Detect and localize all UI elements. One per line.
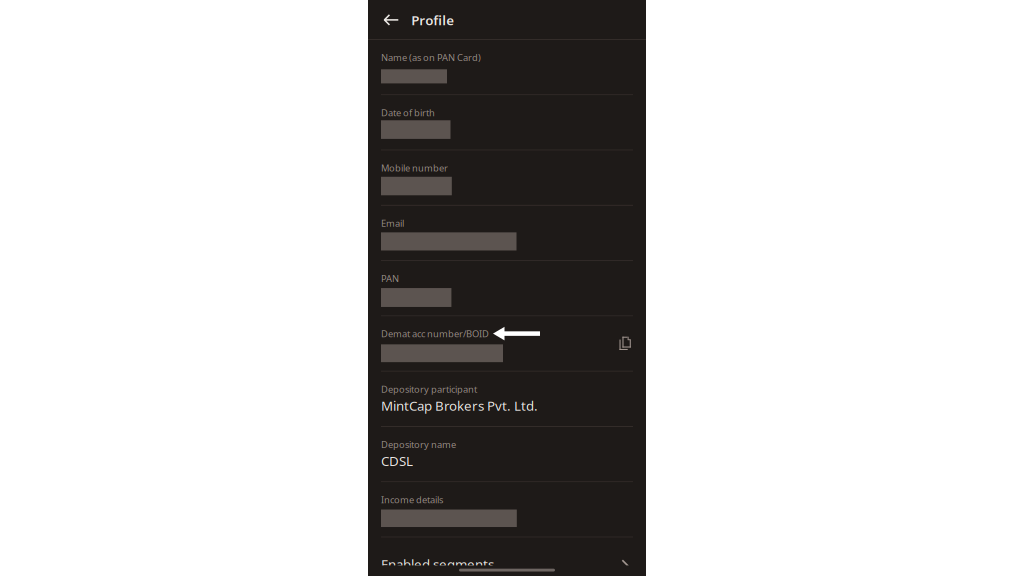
staticText: MintCap Brokers Pvt. Ltd. bbox=[381, 397, 538, 414]
button[interactable]: Copy demat account number bbox=[606, 330, 636, 360]
staticText: Email bbox=[381, 217, 404, 229]
staticText: Depository participant bbox=[381, 383, 477, 395]
staticText: Mobile number bbox=[381, 162, 448, 174]
staticText: Enabled segments bbox=[381, 555, 494, 573]
staticText: Name (as on PAN Card) bbox=[381, 51, 481, 63]
staticText: Profile bbox=[411, 11, 454, 29]
button[interactable]: Back bbox=[377, 0, 405, 39]
button[interactable]: Enabled segments bbox=[381, 538, 633, 576]
staticText: Income details bbox=[381, 493, 443, 506]
staticText: Date of birth bbox=[381, 106, 435, 119]
staticText: PAN bbox=[381, 272, 399, 285]
staticText: Depository name bbox=[381, 438, 456, 450]
staticText: CDSL bbox=[381, 452, 413, 470]
staticText: Demat acc number/BOID bbox=[381, 328, 489, 340]
